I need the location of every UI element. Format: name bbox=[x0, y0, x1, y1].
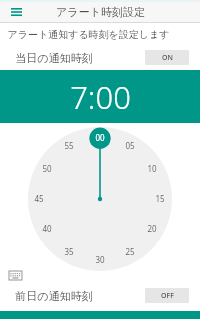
staticText: 20 bbox=[147, 223, 157, 234]
staticText: 05 bbox=[125, 140, 135, 151]
button[interactable]: OFF bbox=[145, 288, 189, 303]
staticText: ON bbox=[162, 53, 173, 63]
button[interactable]: ON bbox=[145, 50, 189, 65]
staticText: 15 bbox=[155, 193, 165, 204]
staticText: 10 bbox=[147, 163, 157, 174]
staticText: 7:00 bbox=[70, 76, 131, 118]
button[interactable]: Menu bbox=[0, 2, 32, 22]
staticText: 30 bbox=[95, 254, 105, 265]
staticText: OFF bbox=[161, 291, 174, 301]
staticText: 00 bbox=[95, 132, 105, 143]
staticText: 35 bbox=[64, 246, 74, 257]
staticText: 55 bbox=[64, 140, 74, 151]
staticText: 45 bbox=[34, 193, 44, 204]
button[interactable]: 00 bbox=[28, 127, 172, 271]
staticText: 当日の通知時刻 bbox=[15, 51, 93, 65]
staticText: アラート通知する時刻を設定します bbox=[7, 28, 170, 41]
staticText: 前日の通知時刻 bbox=[15, 289, 93, 303]
staticText: アラート時刻設定 bbox=[56, 5, 145, 19]
button[interactable]: Keyboard input bbox=[9, 271, 22, 280]
staticText: 50 bbox=[42, 163, 52, 174]
staticText: 40 bbox=[42, 223, 52, 234]
staticText: 25 bbox=[125, 246, 135, 257]
